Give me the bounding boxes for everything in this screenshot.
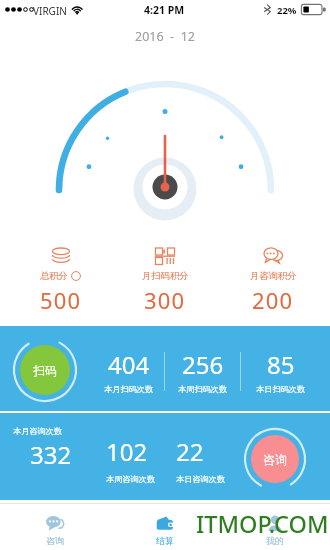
button[interactable]: 扫码 [12, 337, 78, 403]
staticText: ITMOP.COM [196, 508, 329, 540]
staticText: 本月咨询次数 [13, 426, 63, 436]
staticText: 本日扫码次数 [256, 384, 306, 394]
staticText: 结算 [156, 535, 174, 546]
button[interactable]: 102 [106, 435, 156, 484]
button[interactable]: 月咨询积分 [218, 240, 328, 312]
button[interactable]: 404 [89, 348, 169, 394]
staticText: 本月扫码次数 [104, 384, 154, 394]
staticText: 85 [267, 348, 295, 381]
staticText: 咨询 [46, 535, 64, 546]
staticText: 本周咨询次数 [106, 474, 156, 484]
staticText: 22 [176, 435, 204, 468]
staticText: 4:21 PM [144, 3, 185, 17]
staticText: 2016 - 12 [135, 28, 195, 45]
button[interactable]: 月扫码积分 [110, 240, 220, 312]
staticText: 332 [30, 438, 72, 471]
staticText: 22% [277, 4, 297, 17]
staticText: 我的 [266, 535, 284, 546]
button[interactable]: 85 [241, 348, 321, 394]
staticText: 300 [144, 285, 186, 312]
button[interactable]: 咨询 [0, 504, 110, 550]
staticText: 总积分 [40, 270, 68, 282]
staticText: 500 [40, 285, 82, 312]
staticText: 本周扫码次数 [178, 384, 228, 394]
button[interactable]: 总积分 [5, 240, 116, 312]
staticText: 256 [182, 348, 224, 381]
staticText: VIRGIN [33, 4, 67, 18]
staticText: 月咨询积分 [250, 270, 297, 282]
button[interactable]: 我的 [220, 504, 330, 550]
staticText: 404 [108, 348, 150, 381]
button[interactable]: 256 [163, 348, 243, 394]
button[interactable]: 本月咨询次数 [13, 426, 63, 471]
button[interactable]: 22 [176, 435, 226, 484]
staticText: 咨询 [263, 452, 287, 467]
staticText: 102 [106, 435, 148, 468]
staticText: 200 [252, 285, 294, 312]
staticText: 本日咨询次数 [176, 474, 226, 484]
staticText: 扫码 [33, 363, 57, 378]
button[interactable]: 结算 [110, 504, 220, 550]
staticText: 月扫码积分 [142, 270, 189, 282]
button[interactable]: 咨询 [242, 426, 308, 492]
